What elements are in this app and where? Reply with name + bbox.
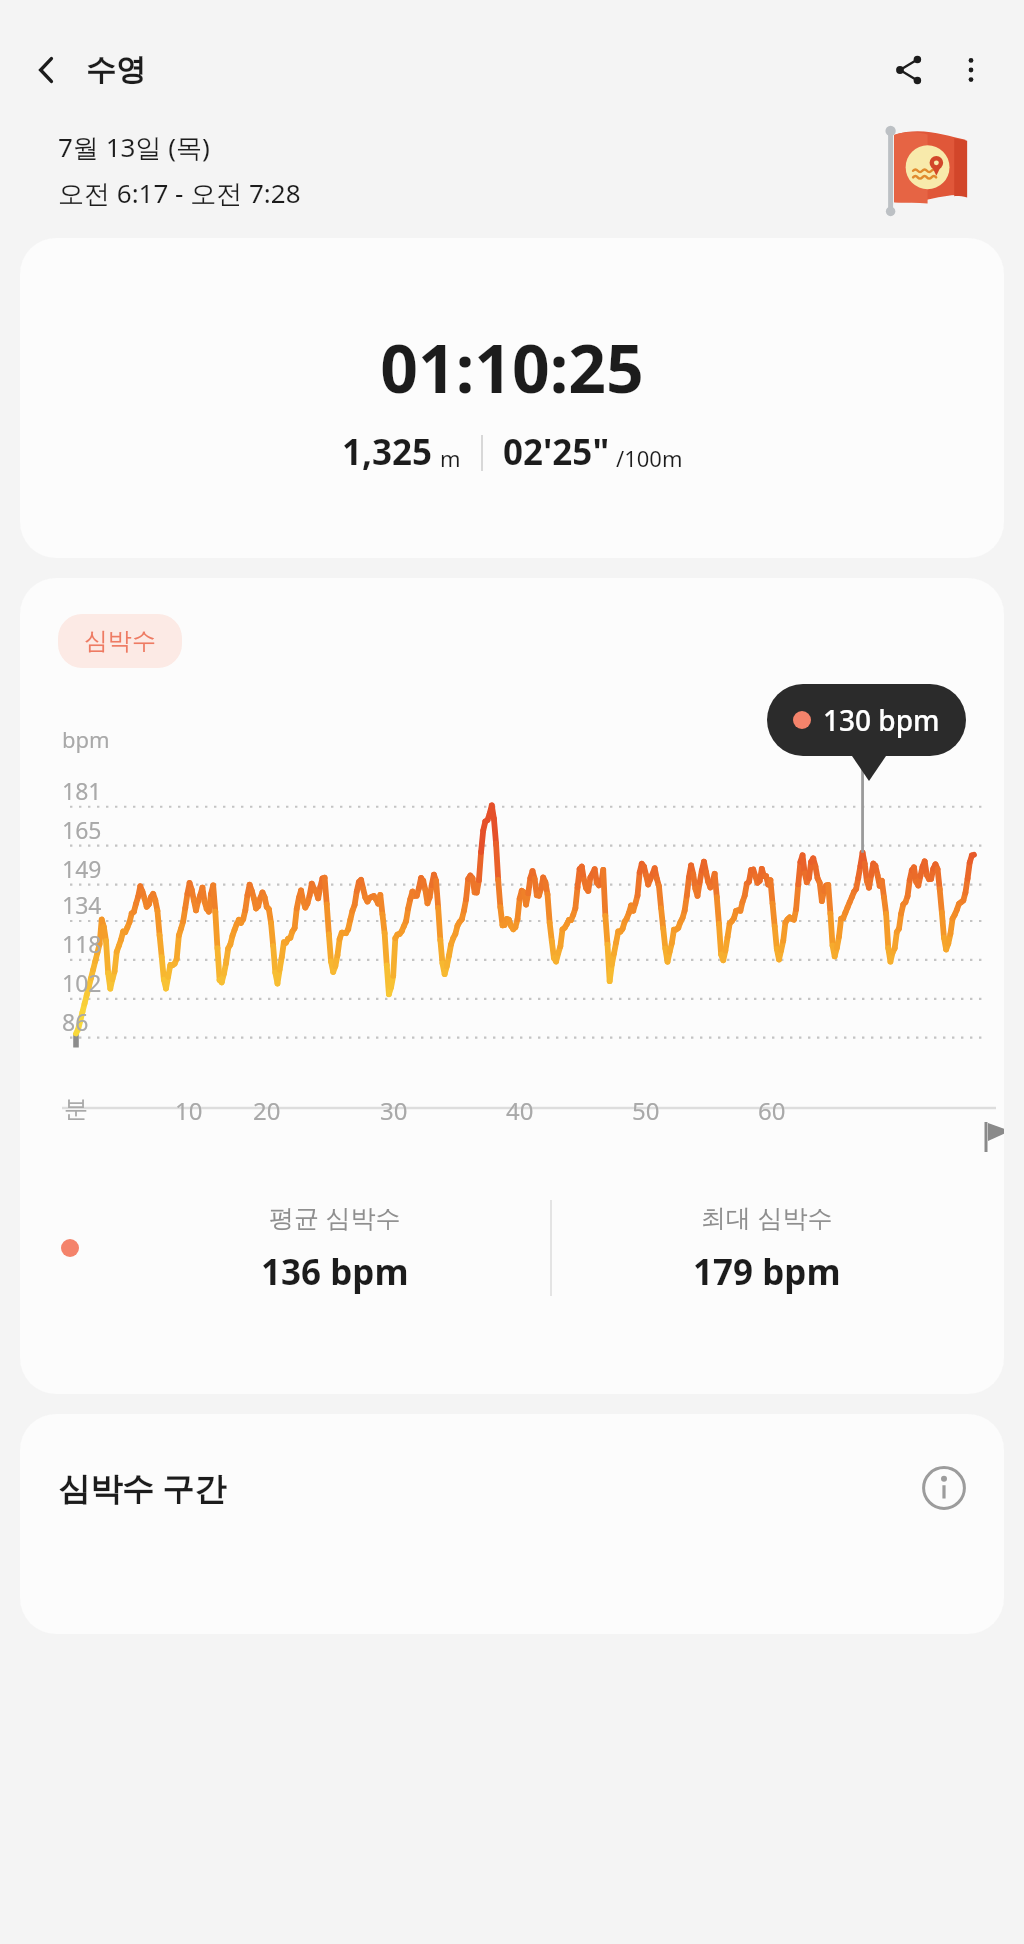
staticText: 02'25"	[503, 428, 610, 476]
button[interactable]: 심박수	[58, 614, 182, 668]
staticText: 1,325	[342, 428, 433, 476]
staticText: 179 bpm	[693, 1248, 841, 1296]
staticText: 134	[62, 889, 102, 920]
staticText: 평균 심박수	[269, 1200, 401, 1234]
staticText: 149	[62, 853, 102, 884]
staticText: 102	[62, 967, 102, 998]
staticText: 30	[380, 1094, 408, 1127]
staticText: 20	[253, 1094, 281, 1127]
staticText: 7월 13일 (목)	[58, 129, 210, 165]
staticText: 181	[62, 775, 102, 806]
button[interactable]: Share	[878, 39, 940, 101]
staticText: 01:10:25	[380, 322, 644, 412]
button[interactable]: More options	[940, 39, 1002, 101]
staticText: bpm	[62, 724, 110, 754]
staticText: 165	[62, 814, 102, 845]
button[interactable]: 심박수 구간	[20, 1414, 1004, 1634]
button[interactable]: 130 bpm	[767, 684, 966, 756]
staticText: 최대 심박수	[701, 1200, 833, 1234]
staticText: 60	[758, 1094, 786, 1127]
staticText: 130 bpm	[823, 701, 940, 739]
staticText: 심박수	[84, 626, 156, 656]
button[interactable]: Back	[16, 40, 76, 100]
staticText: 오전 6:17 - 오전 7:28	[58, 175, 301, 211]
button[interactable]: 01:10:25	[20, 238, 1004, 558]
staticText: 136 bpm	[261, 1248, 409, 1296]
staticText: 50	[632, 1094, 660, 1127]
staticText: 118	[62, 928, 102, 959]
staticText: 분	[64, 1094, 88, 1124]
staticText: 10	[175, 1094, 203, 1127]
button[interactable]: Information	[916, 1460, 972, 1516]
staticText: 수영	[86, 51, 146, 89]
staticText: 심박수 구간	[58, 1466, 227, 1510]
staticText: m	[440, 443, 461, 473]
staticText: /100m	[616, 443, 683, 473]
staticText: 86	[62, 1006, 89, 1037]
staticText: 40	[506, 1094, 534, 1127]
